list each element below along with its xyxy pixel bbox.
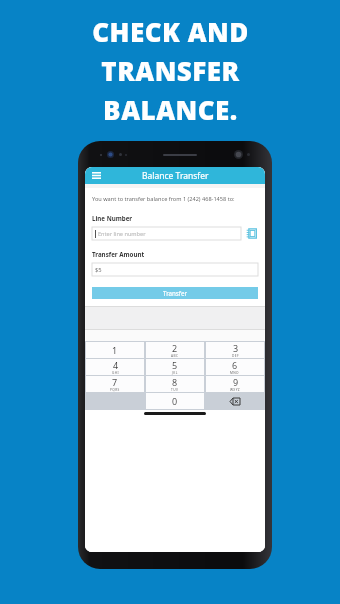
staticText: JKL xyxy=(172,371,178,375)
staticText: 2 xyxy=(172,342,178,354)
staticText: Transfer Amount xyxy=(92,250,145,258)
button[interactable]: 7 xyxy=(86,376,144,392)
button[interactable]: 4 xyxy=(86,359,144,375)
staticText: You want to transfer balance from 1 (242… xyxy=(92,195,235,203)
button[interactable]: 5 xyxy=(146,359,204,375)
staticText: Balance Transfer xyxy=(142,170,209,182)
button[interactable]: Open navigation menu xyxy=(90,169,103,182)
staticText: 9 xyxy=(233,376,239,388)
staticText: TUV xyxy=(171,388,179,392)
staticText: Transfer xyxy=(163,289,187,297)
button[interactable]: Backspace xyxy=(205,393,265,409)
staticText: 8 xyxy=(172,376,178,388)
staticText: 6 xyxy=(232,359,238,371)
button[interactable]: 2 xyxy=(146,342,204,358)
button[interactable]: Pick from contacts xyxy=(245,227,258,240)
staticText: Line Number xyxy=(92,214,133,222)
staticText: ABC xyxy=(171,354,179,358)
button[interactable]: 3 xyxy=(206,342,264,358)
staticText: GHI xyxy=(112,371,119,375)
staticText: PQRS xyxy=(110,388,120,392)
staticText: MNO xyxy=(230,371,240,375)
button[interactable]: 6 xyxy=(206,359,264,375)
staticText: TRANSFER xyxy=(101,53,240,88)
button[interactable]: 8 xyxy=(146,376,204,392)
staticText: 0 xyxy=(172,395,178,407)
staticText: CHECK AND xyxy=(92,14,249,49)
staticText: 5 xyxy=(172,359,178,371)
staticText: 7 xyxy=(112,376,118,388)
button[interactable]: Transfer xyxy=(92,287,258,299)
staticText: 1 xyxy=(112,344,118,356)
staticText: WXYZ xyxy=(230,388,241,392)
staticText: Enter line number xyxy=(98,230,146,238)
staticText: DEF xyxy=(232,354,239,358)
staticText: 4 xyxy=(113,359,119,371)
button[interactable]: $5 xyxy=(92,263,258,276)
button[interactable]: 0 xyxy=(146,393,204,409)
button[interactable]: Enter line number xyxy=(92,227,241,240)
staticText: BALANCE. xyxy=(103,92,238,127)
staticText: $5 xyxy=(95,266,102,274)
button[interactable]: 1 xyxy=(86,342,144,358)
button[interactable]: 9 xyxy=(206,376,264,392)
staticText: 3 xyxy=(233,342,239,354)
